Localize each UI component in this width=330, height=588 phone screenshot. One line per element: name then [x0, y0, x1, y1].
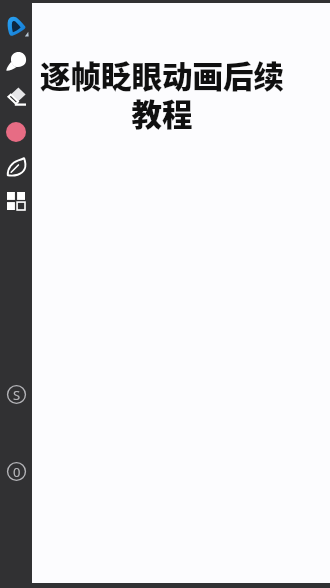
button[interactable]: Brush [0, 45, 32, 77]
button[interactable]: Leaf brush [0, 150, 32, 182]
staticText: 0 [13, 463, 21, 481]
button[interactable]: Eraser [0, 80, 32, 112]
button[interactable]: Layers [0, 185, 32, 217]
staticText: S [13, 386, 21, 404]
button[interactable]: Settings [0, 378, 32, 410]
button[interactable]: Opacity [0, 455, 32, 487]
button[interactable]: Color [0, 116, 32, 148]
button[interactable]: Pen [0, 10, 32, 42]
staticText: 逐帧眨眼动画后续教程 [36, 53, 288, 135]
